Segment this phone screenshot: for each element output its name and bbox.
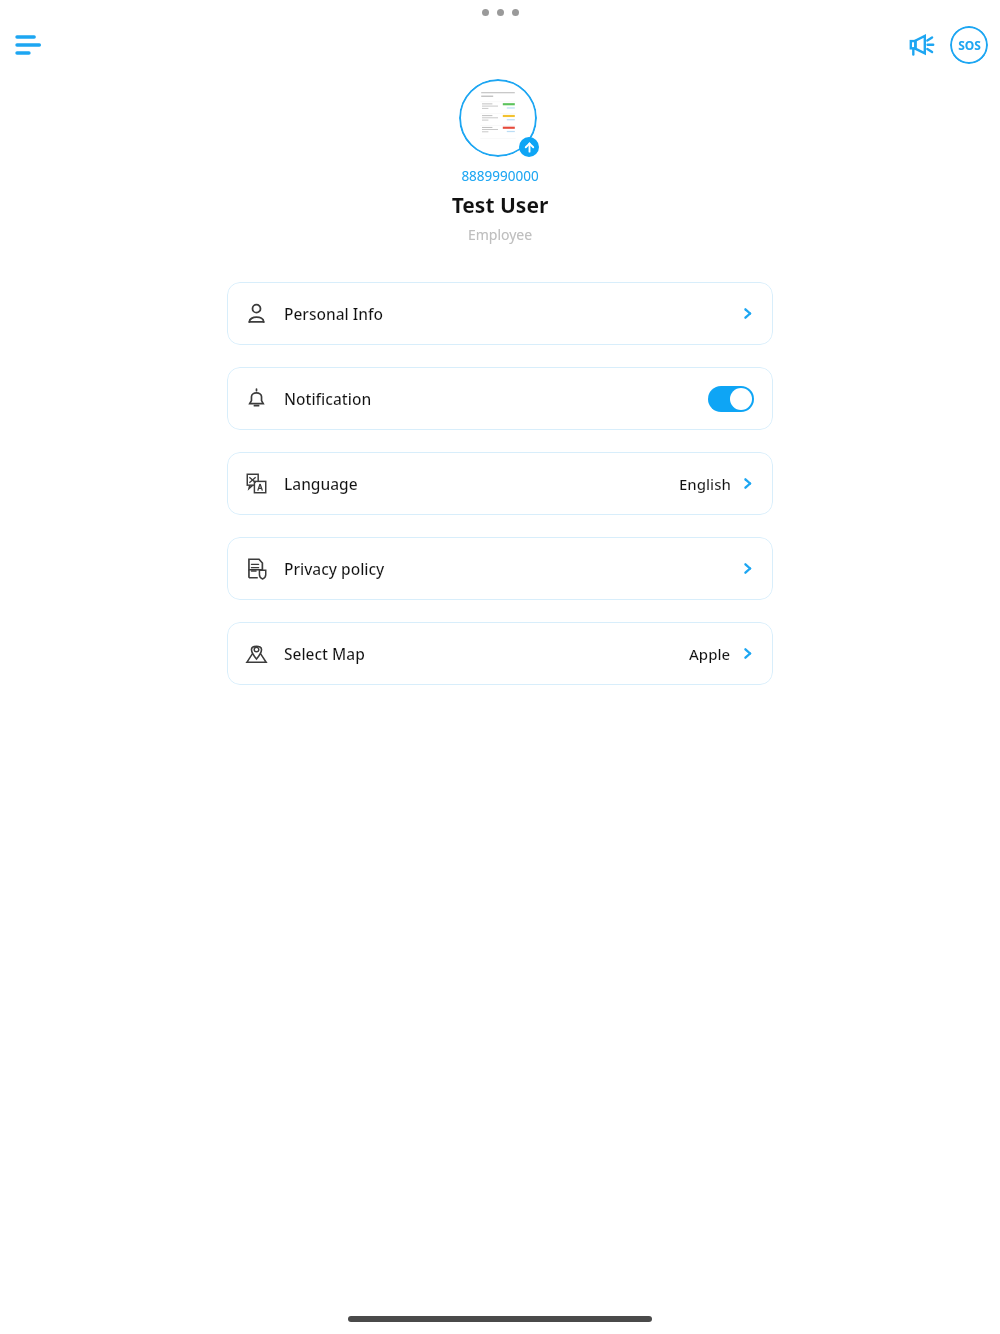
staticText: SOS (958, 37, 981, 53)
staticText: Language (284, 473, 358, 494)
button[interactable]: Privacy policy (227, 537, 773, 600)
button[interactable]: Announcements (900, 24, 944, 66)
staticText: 8889990000 (0, 167, 1000, 185)
button[interactable]: Select Map (227, 622, 773, 685)
staticText: Test User (0, 191, 1000, 220)
button[interactable]: SOS (950, 26, 988, 64)
button[interactable]: Notification (227, 367, 773, 430)
button[interactable]: Menu (8, 25, 48, 65)
button[interactable]: Notification toggle (708, 386, 754, 412)
staticText: Privacy policy (284, 558, 385, 579)
button[interactable]: Upload photo (519, 137, 539, 157)
staticText: Employee (0, 225, 1000, 244)
staticText: English (679, 474, 731, 494)
button[interactable]: Language (227, 452, 773, 515)
staticText: Notification (284, 388, 372, 409)
staticText: Select Map (284, 643, 365, 664)
button[interactable]: Profile photo (459, 79, 537, 157)
button[interactable]: Personal Info (227, 282, 773, 345)
staticText: Personal Info (284, 303, 383, 324)
staticText: Apple (689, 644, 731, 664)
